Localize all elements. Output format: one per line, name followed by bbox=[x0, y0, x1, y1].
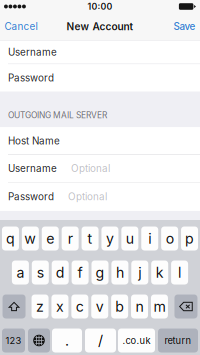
button[interactable]: z bbox=[31, 294, 48, 318]
staticText: Optional bbox=[71, 162, 110, 174]
button[interactable]: return bbox=[158, 328, 198, 352]
staticText: s bbox=[37, 264, 44, 281]
staticText: i bbox=[148, 230, 151, 247]
button[interactable]: / bbox=[85, 328, 116, 352]
button[interactable]: u bbox=[121, 226, 138, 250]
staticText: k bbox=[156, 264, 164, 281]
staticText: u bbox=[126, 230, 134, 247]
button[interactable]: e bbox=[42, 226, 59, 250]
button[interactable]: y bbox=[101, 226, 118, 250]
staticText: n bbox=[136, 298, 144, 315]
staticText: Cancel bbox=[4, 20, 37, 32]
staticText: 10:00 bbox=[87, 1, 112, 12]
button[interactable]: Next keyboard bbox=[28, 328, 50, 352]
staticText: e bbox=[46, 230, 54, 247]
staticText: 123 bbox=[5, 335, 21, 346]
staticText: o bbox=[166, 230, 174, 247]
staticText: / bbox=[98, 332, 103, 349]
staticText: h bbox=[116, 264, 124, 281]
staticText: Host Name bbox=[8, 135, 60, 147]
button[interactable]: t bbox=[81, 226, 98, 250]
staticText: r bbox=[68, 230, 73, 247]
staticText: Username bbox=[8, 46, 57, 58]
button[interactable]: o bbox=[161, 226, 178, 250]
button[interactable]: c bbox=[71, 294, 88, 318]
staticText: m bbox=[153, 298, 165, 315]
staticText: w bbox=[24, 230, 36, 247]
button[interactable]: Delete bbox=[174, 294, 197, 318]
staticText: t bbox=[87, 230, 92, 247]
staticText: b bbox=[115, 298, 124, 315]
button[interactable]: w bbox=[22, 226, 39, 250]
button[interactable]: .co.uk bbox=[118, 328, 155, 352]
button[interactable]: r bbox=[62, 226, 79, 250]
staticText: New Account bbox=[66, 20, 133, 33]
button[interactable]: Host Name bbox=[0, 127, 200, 154]
staticText: a bbox=[16, 264, 24, 281]
staticText: Save bbox=[173, 20, 195, 32]
staticText: q bbox=[6, 230, 15, 247]
button[interactable]: h bbox=[111, 260, 128, 284]
button[interactable]: d bbox=[52, 260, 69, 284]
button[interactable]: q bbox=[2, 226, 19, 250]
staticText: Password bbox=[8, 191, 54, 203]
staticText: .co.uk bbox=[122, 335, 150, 346]
button[interactable]: g bbox=[91, 260, 108, 284]
staticText: d bbox=[56, 264, 65, 281]
button[interactable]: Username bbox=[0, 155, 200, 182]
staticText: v bbox=[96, 298, 104, 315]
button[interactable]: s bbox=[32, 260, 49, 284]
button[interactable]: Cancel bbox=[0, 14, 42, 38]
staticText: g bbox=[95, 264, 104, 281]
staticText: p bbox=[185, 230, 194, 247]
staticText: return bbox=[164, 335, 191, 346]
button[interactable]: n bbox=[131, 294, 148, 318]
button[interactable]: l bbox=[171, 260, 188, 284]
staticText: c bbox=[76, 298, 84, 315]
button[interactable]: Save bbox=[169, 14, 200, 38]
staticText: Optional bbox=[68, 191, 107, 203]
staticText: Password bbox=[8, 72, 54, 84]
staticText: Username bbox=[8, 162, 57, 174]
button[interactable]: f bbox=[72, 260, 89, 284]
button[interactable]: Shift bbox=[2, 294, 25, 318]
staticText: . bbox=[65, 332, 69, 349]
button[interactable]: p bbox=[181, 226, 198, 250]
button[interactable]: Username bbox=[0, 41, 200, 64]
staticText: OUTGOING MAIL SERVER bbox=[8, 110, 107, 120]
button[interactable]: Password bbox=[0, 183, 200, 211]
button[interactable]: 123 bbox=[2, 328, 25, 352]
staticText: f bbox=[78, 264, 83, 281]
staticText: z bbox=[36, 298, 44, 315]
button[interactable]: b bbox=[111, 294, 128, 318]
staticText: y bbox=[106, 230, 114, 247]
button[interactable]: j bbox=[131, 260, 148, 284]
staticText: j bbox=[138, 264, 141, 281]
staticText: x bbox=[56, 298, 64, 315]
button[interactable]: k bbox=[151, 260, 168, 284]
button[interactable]: x bbox=[51, 294, 68, 318]
staticText: l bbox=[178, 264, 181, 281]
button[interactable]: v bbox=[91, 294, 108, 318]
button[interactable]: i bbox=[141, 226, 158, 250]
button[interactable]: a bbox=[12, 260, 29, 284]
button[interactable]: m bbox=[151, 294, 168, 318]
button[interactable]: . bbox=[52, 328, 82, 352]
button[interactable]: Password bbox=[0, 64, 200, 91]
